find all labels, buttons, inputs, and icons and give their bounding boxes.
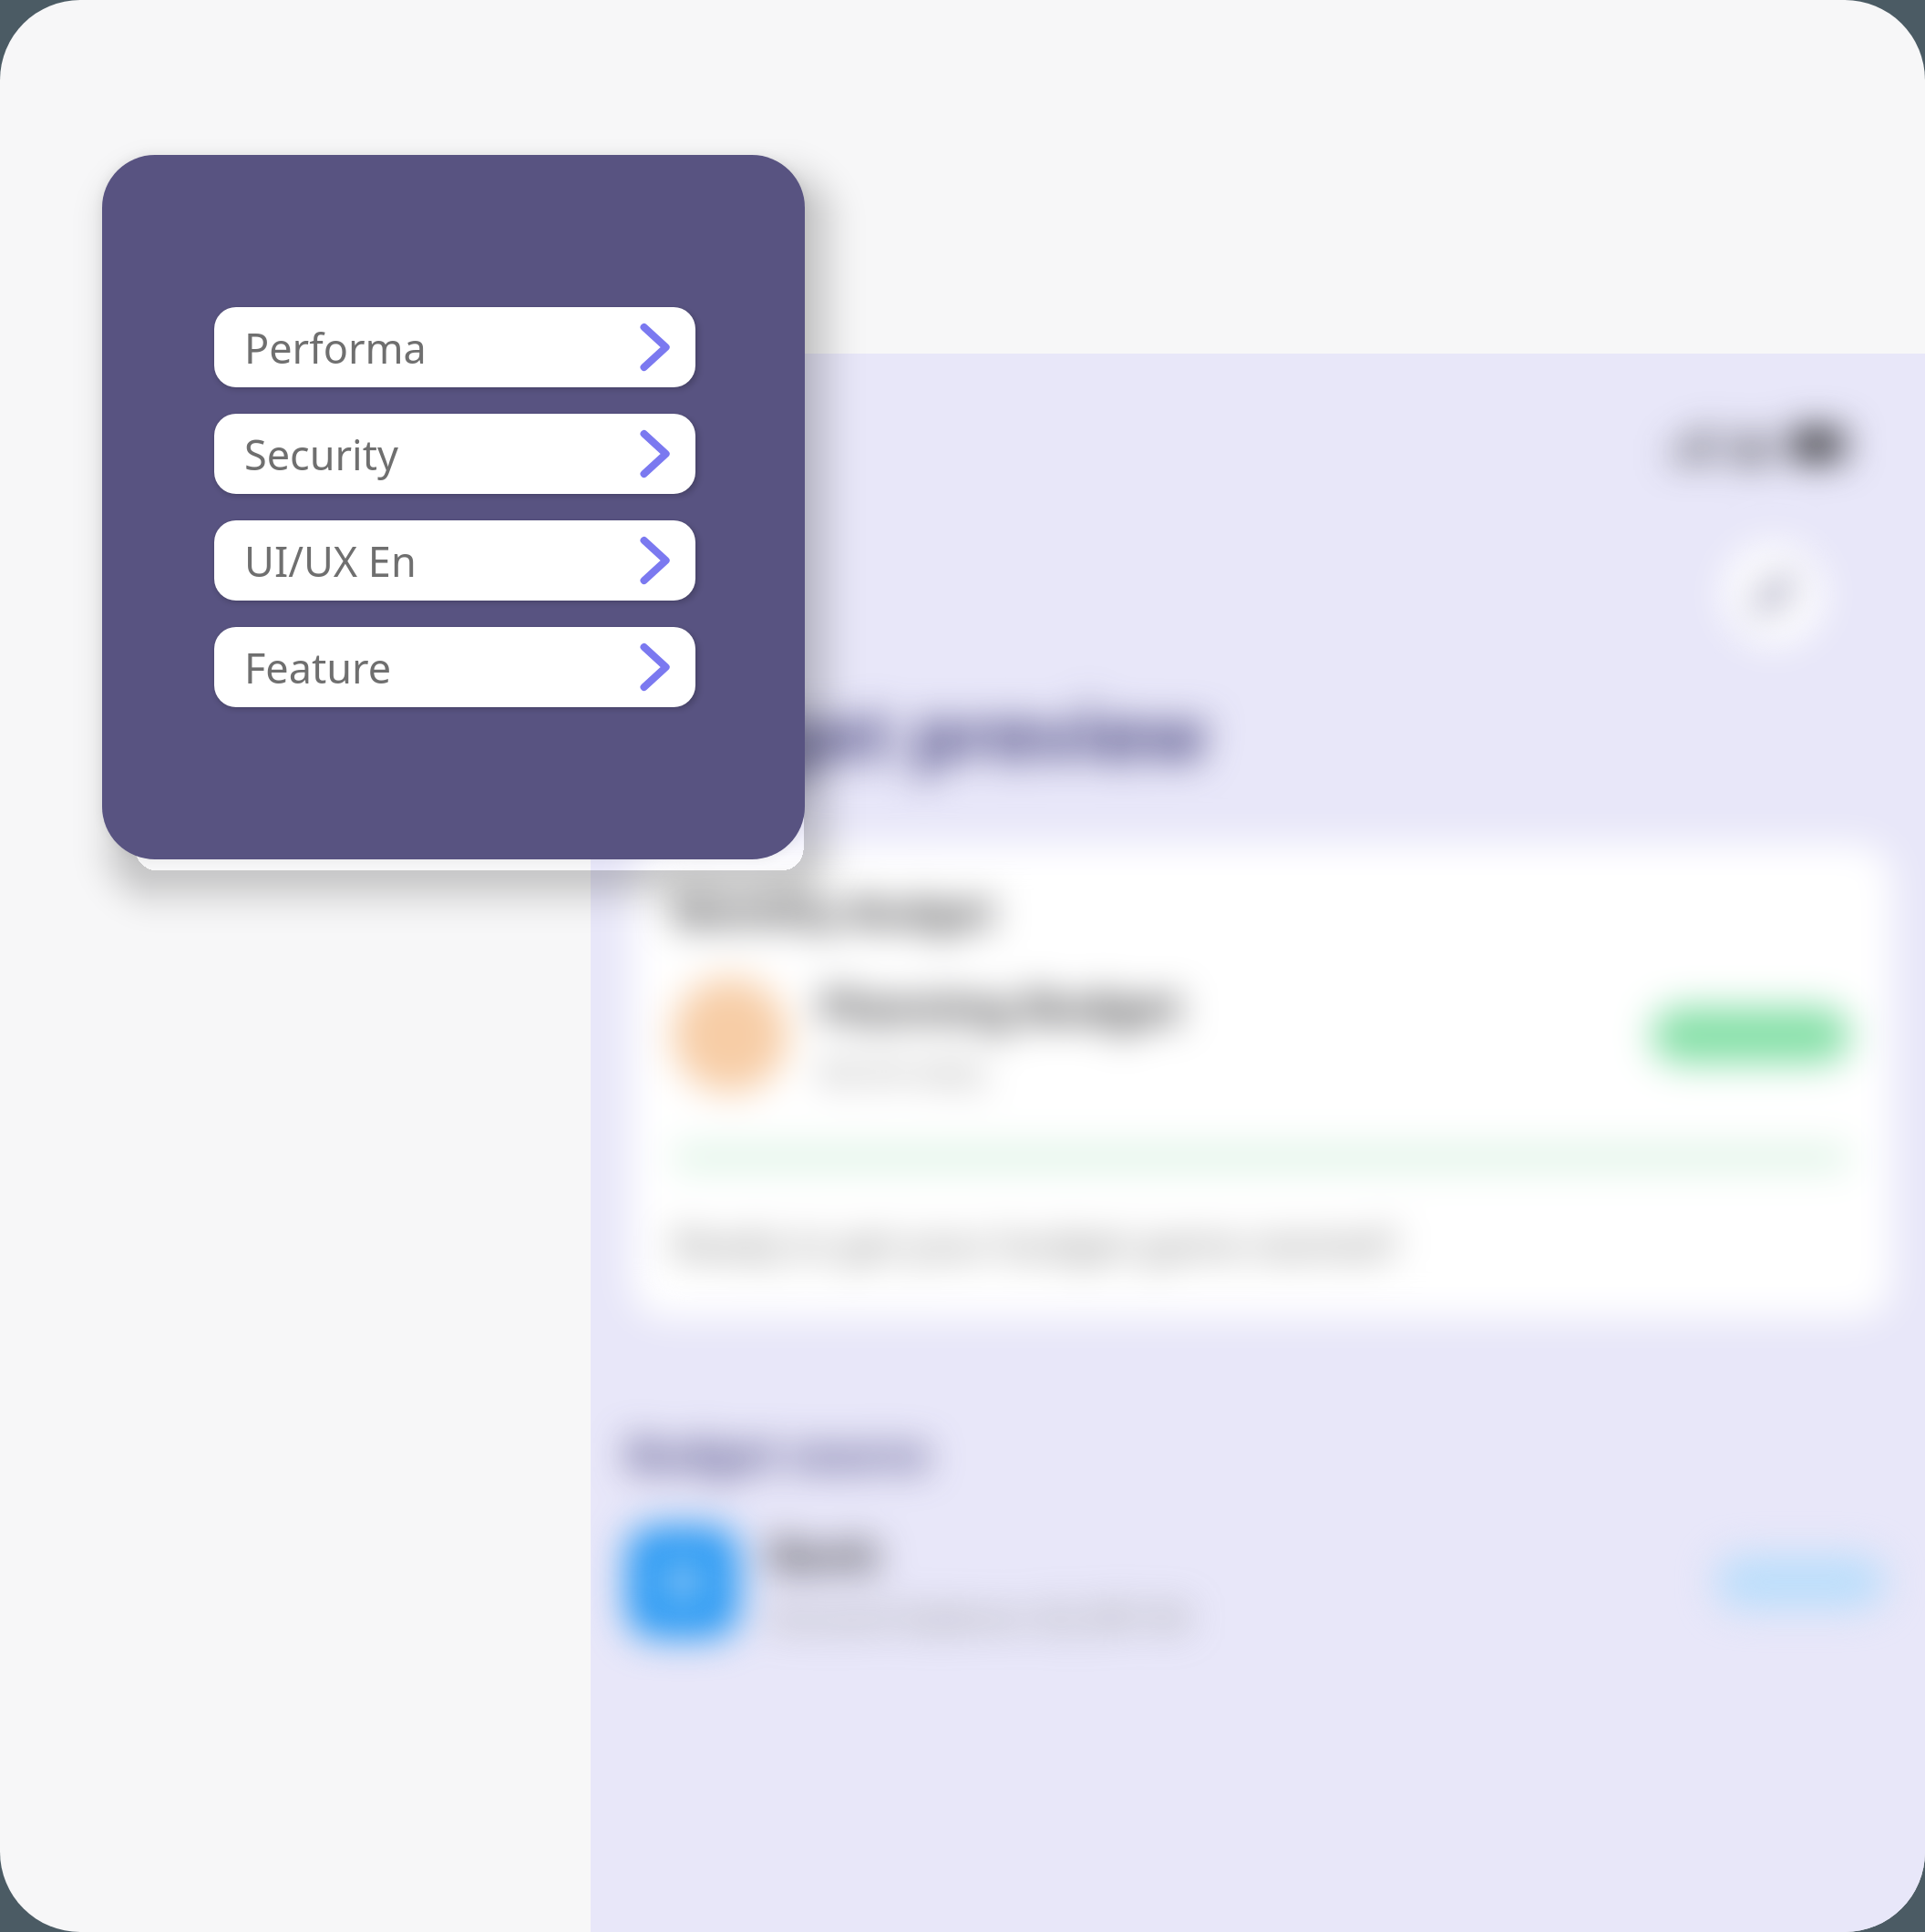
staticText: Security Audits (244, 426, 438, 482)
button[interactable]: Performance Tuning (214, 307, 695, 387)
staticText: Performance Tuning (244, 320, 438, 375)
other: Open (641, 431, 668, 477)
staticText: Bank (769, 1525, 880, 1584)
staticText: UI/UX Enhancements (244, 533, 438, 589)
other: Open (641, 324, 668, 370)
other: Open (641, 538, 668, 583)
staticText: Budget source (627, 1425, 929, 1483)
button[interactable]: Security Audits (214, 414, 695, 494)
staticText: Feature Upgrades (244, 640, 438, 695)
staticText: Monthly Budget (673, 884, 995, 939)
button[interactable]: Feature Upgrades (214, 627, 695, 707)
staticText: Ready to get your budget game started? (673, 1218, 1398, 1269)
staticText: Budget preview (623, 682, 1208, 784)
button[interactable]: UI/UX Enhancements (214, 520, 695, 601)
staticText: Planning Budget (820, 977, 1182, 1036)
other: Open (641, 644, 668, 690)
